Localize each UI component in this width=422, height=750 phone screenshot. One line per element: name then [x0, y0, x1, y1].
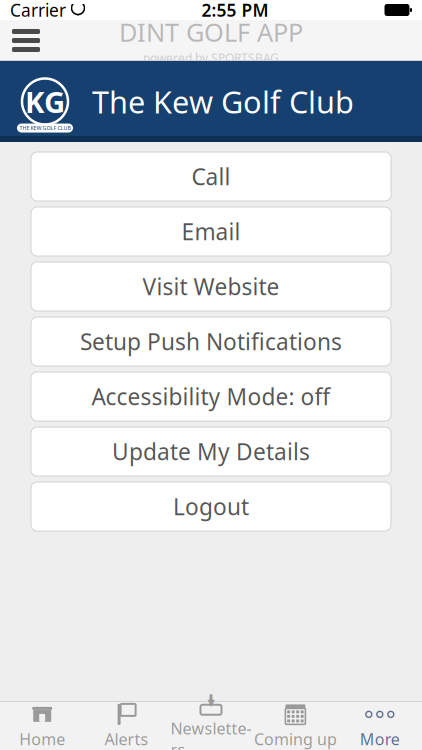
button[interactable]: Coming up — [253, 702, 338, 750]
staticText: Call — [191, 161, 230, 191]
staticText: Update My Details — [112, 436, 310, 466]
button[interactable]: Visit Website — [31, 262, 391, 311]
button[interactable]: Email — [31, 207, 391, 256]
staticText: Email — [181, 216, 240, 246]
staticText: Accessibility Mode: off — [91, 381, 330, 411]
staticText: 2:55 PM — [201, 0, 268, 21]
staticText: Newsletters — [170, 718, 251, 750]
staticText: Carrier — [10, 0, 66, 21]
staticText: Alerts — [105, 728, 149, 750]
staticText: Coming up — [254, 728, 337, 750]
staticText: The Kew Golf Club — [92, 81, 354, 122]
staticText: More — [360, 728, 400, 750]
button[interactable]: ▾ — [169, 702, 253, 750]
button[interactable]: Call — [31, 152, 391, 201]
button[interactable]: Logout — [31, 482, 391, 531]
staticText: THE KEW GOLF CLUB — [19, 124, 70, 132]
staticText: ▾ — [207, 694, 214, 710]
button[interactable]: Menu — [0, 21, 52, 60]
staticText: Home — [19, 728, 65, 750]
staticText: Setup Push Notifications — [80, 326, 342, 356]
button[interactable]: Accessibility Mode: off — [31, 372, 391, 421]
button[interactable]: Update My Details — [31, 427, 391, 476]
staticText: DINT GOLF APP — [119, 15, 303, 49]
staticText: KG — [25, 82, 65, 121]
button[interactable]: Home — [0, 702, 84, 750]
staticText: powered by SPORTSBAG — [143, 50, 279, 66]
button[interactable]: Setup Push Notifications — [31, 317, 391, 366]
staticText: Logout — [173, 491, 249, 521]
button[interactable]: More — [338, 702, 422, 750]
button[interactable]: Alerts — [84, 702, 169, 750]
staticText: Visit Website — [142, 271, 279, 301]
